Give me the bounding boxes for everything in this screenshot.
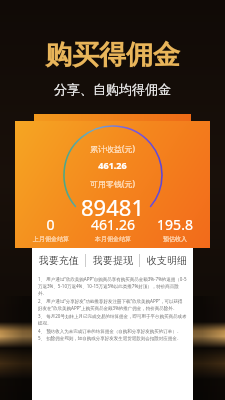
staticText: 5、 扣除佣金规则，如自购或分享好友发生退货退款则会扣除对应佣金。 <box>38 335 187 341</box>
staticText: 我要充值 <box>39 254 79 267</box>
button[interactable]: 0 <box>19 215 82 243</box>
button[interactable]: 累计收益(元) <box>15 121 210 248</box>
button[interactable]: 我要提现 <box>86 248 139 273</box>
button[interactable]: 我要充值 <box>32 248 85 273</box>
staticText: 461.26 <box>98 159 127 171</box>
staticText: 可用零钱(元) <box>90 178 135 189</box>
staticText: 累计收益(元) <box>90 143 135 154</box>
staticText: 预估收入 <box>163 235 187 243</box>
staticText: 0 <box>46 215 55 234</box>
button[interactable]: 195.8 <box>144 215 206 243</box>
staticText: 上月佣金结算 <box>33 235 69 243</box>
staticText: 本月佣金结算 <box>95 235 131 243</box>
staticText: 1、 用户通过“欣欣美购APP”自购商品享有购买商品金额3%-7%的返佣（0-5… <box>38 276 187 297</box>
staticText: 收支明细 <box>147 254 187 267</box>
staticText: 89481 <box>81 192 144 222</box>
staticText: 195.8 <box>157 215 193 234</box>
button[interactable]: 461.26 <box>82 215 144 243</box>
staticText: 购买得佣金 <box>0 38 225 72</box>
staticText: 2、 用户通过“分享好友”功能推荐好友注册下载“欣欣美购APP”，可以获得好友在… <box>38 298 187 312</box>
button[interactable]: 收支明细 <box>140 248 193 273</box>
staticText: 3、 每月20号划转上月已完成交易的结算佣金，即可用于平台购买商品或者提现。 <box>38 313 187 327</box>
staticText: 分享、自购均得佣金 <box>0 81 225 97</box>
staticText: 461.26 <box>91 215 135 234</box>
staticText: 4、 预估收入为未完成订单的结算佣金（自购和分享好友购买的订单）。 <box>38 328 187 334</box>
staticText: 我要提现 <box>93 254 133 267</box>
